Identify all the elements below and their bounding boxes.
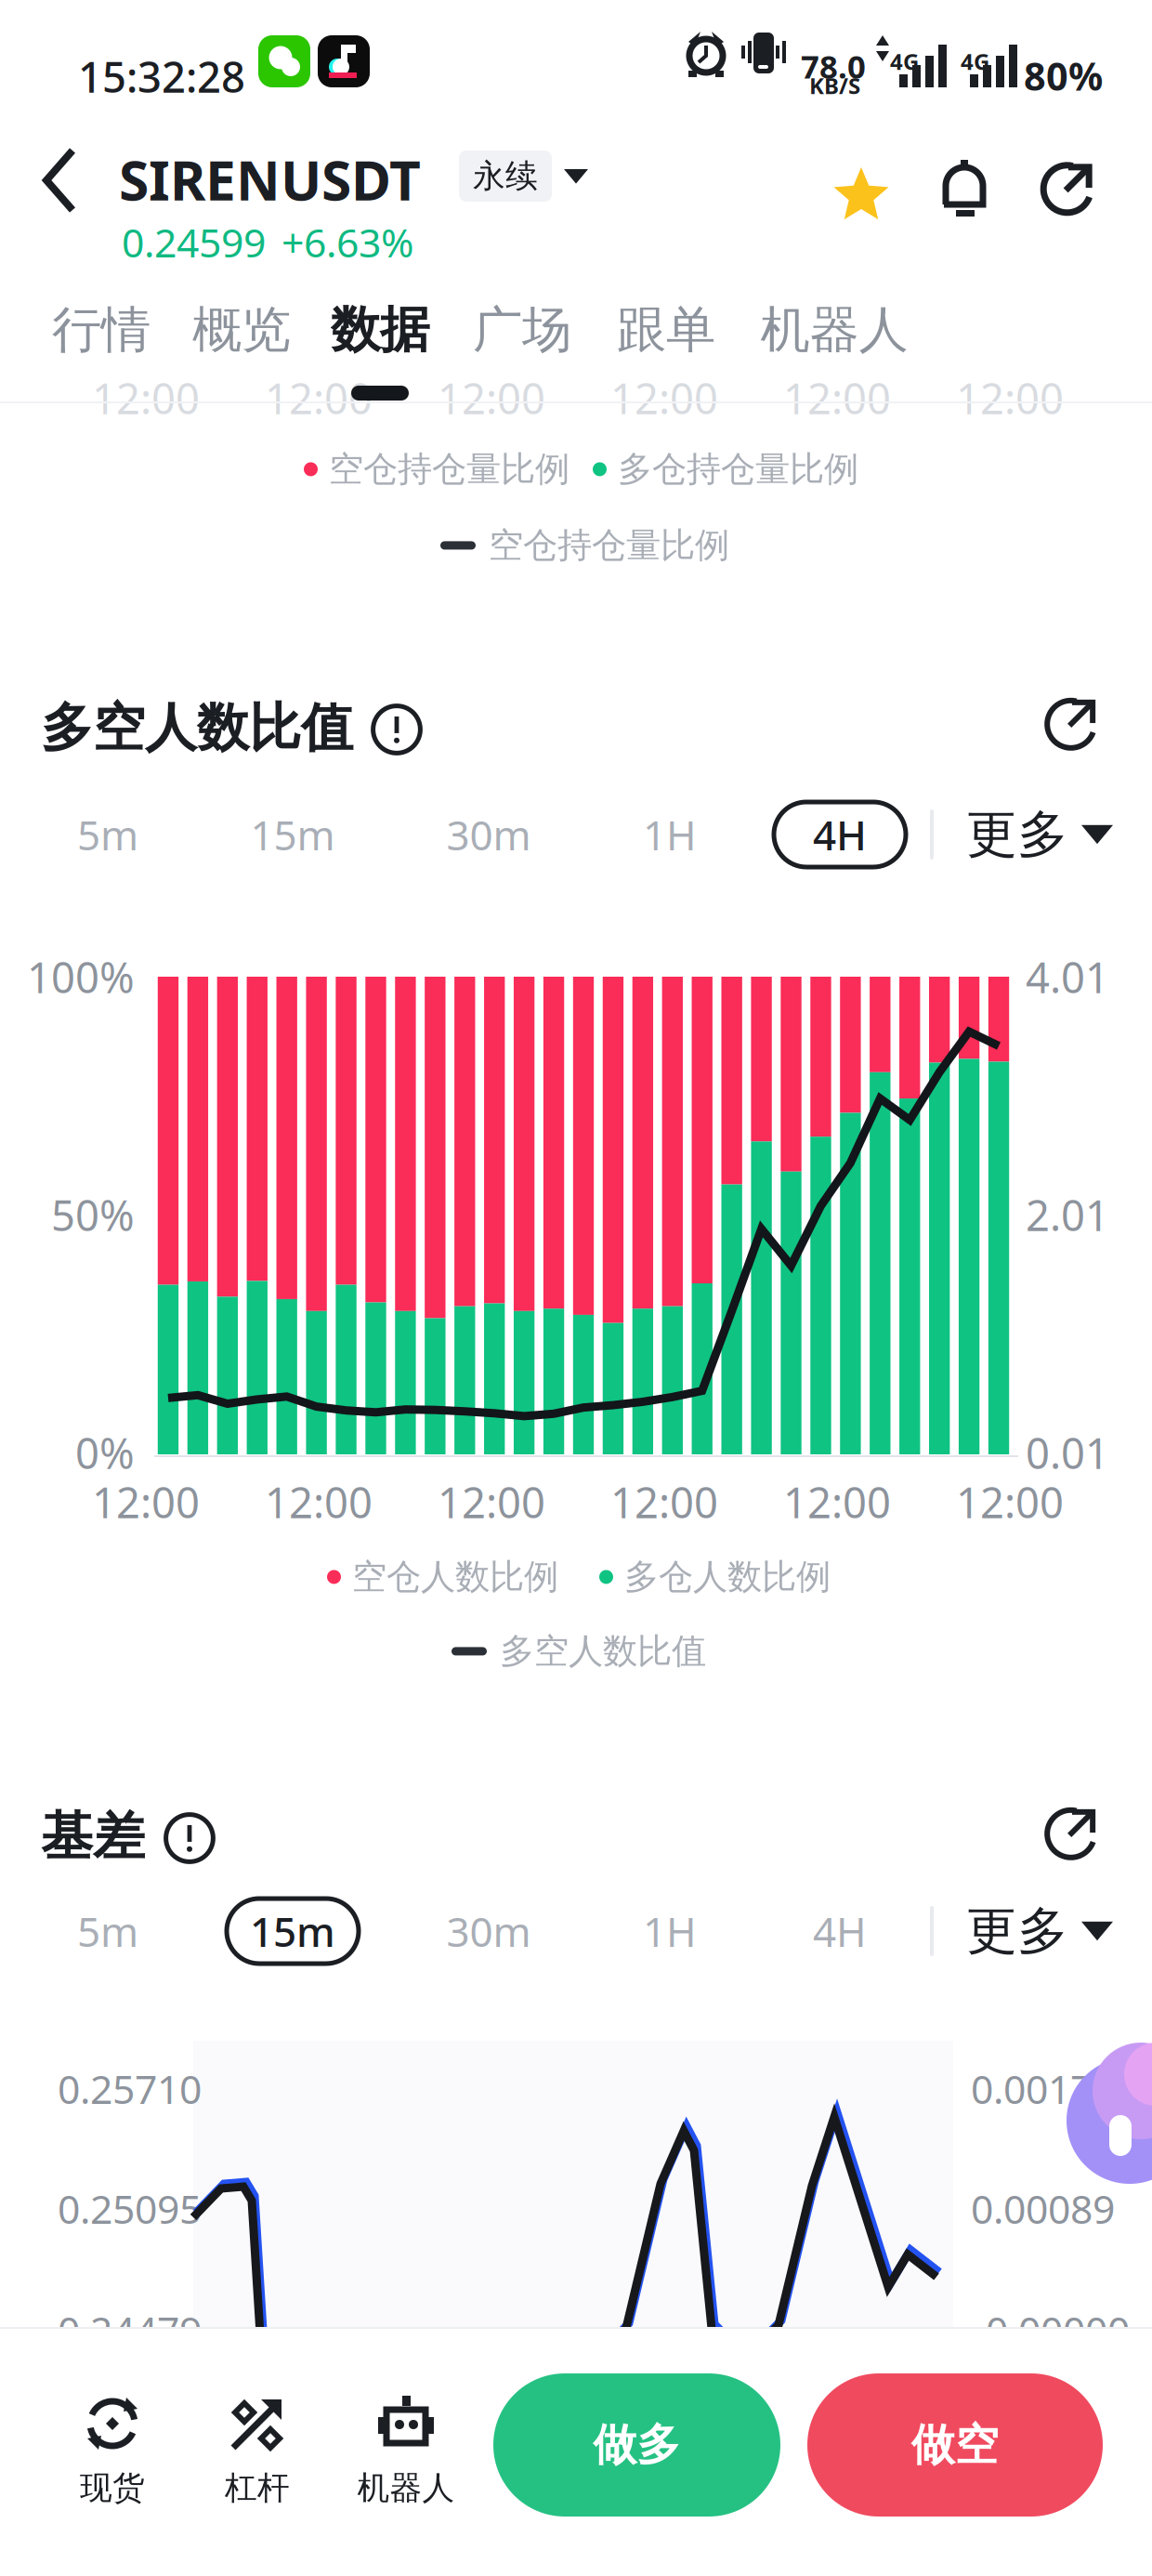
staticText: 12:00 bbox=[92, 370, 200, 426]
staticText: 做多 bbox=[593, 2418, 681, 2472]
staticText: 12:00 bbox=[438, 370, 545, 426]
button[interactable]: 做空 bbox=[807, 2373, 1103, 2517]
staticText: 5m bbox=[77, 1904, 138, 1958]
staticText: KB/S bbox=[809, 71, 860, 100]
button[interactable]: Assistant bbox=[1067, 2054, 1152, 2188]
staticText: 多仓人数比例 bbox=[624, 1556, 831, 1598]
button[interactable]: 更多 bbox=[953, 802, 1126, 867]
button[interactable]: 5m bbox=[42, 802, 174, 867]
button[interactable]: Expand chart bbox=[1046, 695, 1100, 749]
staticText: 12:00 bbox=[265, 370, 373, 426]
staticText: 12:00 bbox=[783, 370, 891, 426]
staticText: 4H bbox=[813, 1904, 867, 1958]
staticText: 跟单 bbox=[617, 299, 715, 360]
staticText: 0.25710 bbox=[58, 2062, 202, 2115]
staticText: 0.24599 bbox=[122, 216, 266, 268]
staticText: 更多 bbox=[966, 1900, 1068, 1962]
staticText: 空仓持仓量比例 bbox=[489, 524, 729, 567]
staticText: 永续 bbox=[473, 156, 538, 196]
staticText: 更多 bbox=[966, 803, 1068, 866]
button[interactable]: 15m bbox=[227, 802, 359, 867]
staticText: 空仓持仓量比例 bbox=[329, 448, 569, 491]
staticText: 数据 bbox=[331, 299, 429, 360]
button[interactable]: 4H bbox=[774, 1899, 906, 1964]
staticText: 行情 bbox=[52, 299, 151, 360]
staticText: 12:00 bbox=[265, 1474, 373, 1530]
staticText: 做空 bbox=[911, 2418, 999, 2472]
staticText: 机器人 bbox=[760, 299, 908, 360]
staticText: 15m bbox=[250, 807, 335, 862]
staticText: 空仓人数比例 bbox=[352, 1556, 558, 1598]
staticText: 50% bbox=[51, 1187, 135, 1243]
button[interactable]: 广场 bbox=[383, 288, 661, 372]
staticText: 78.0 bbox=[801, 45, 866, 87]
button[interactable]: 1H bbox=[604, 802, 736, 867]
staticText: 多仓持仓量比例 bbox=[618, 448, 858, 491]
staticText: 2.01 bbox=[1026, 1187, 1109, 1243]
staticText: 30m bbox=[446, 1904, 531, 1958]
staticText: 现货 bbox=[80, 2468, 145, 2508]
button[interactable]: 机器人 bbox=[695, 288, 974, 372]
button[interactable]: 概览 bbox=[102, 288, 381, 372]
button[interactable]: 更多 bbox=[953, 1899, 1126, 1964]
staticText: 100% bbox=[27, 949, 135, 1005]
button[interactable]: 30m bbox=[423, 1899, 555, 1964]
staticText: 15:32:28 bbox=[78, 48, 245, 104]
staticText: 4.01 bbox=[1026, 949, 1109, 1005]
staticText: 0% bbox=[75, 1425, 135, 1481]
staticText: 广场 bbox=[473, 299, 571, 360]
staticText: 概览 bbox=[192, 299, 291, 360]
staticText: 4G bbox=[890, 46, 919, 76]
button[interactable]: 现货 bbox=[56, 2396, 169, 2508]
staticText: 5m bbox=[77, 807, 138, 862]
staticText: +6.63% bbox=[281, 216, 413, 268]
staticText: 1H bbox=[643, 1904, 697, 1958]
staticText: 12:00 bbox=[783, 1474, 891, 1530]
staticText: 4H bbox=[813, 807, 867, 862]
staticText: −0.00000 bbox=[963, 2304, 1130, 2356]
staticText: 0.25095 bbox=[58, 2182, 202, 2235]
staticText: 30m bbox=[446, 807, 531, 862]
button[interactable]: 数据 bbox=[241, 288, 519, 372]
staticText: 0.00178 bbox=[971, 2062, 1115, 2115]
button[interactable]: Share bbox=[1042, 160, 1096, 214]
staticText: 12:00 bbox=[610, 1474, 718, 1530]
staticText: 12:00 bbox=[956, 370, 1064, 426]
staticText: 0.00089 bbox=[971, 2182, 1115, 2235]
button[interactable]: Expand chart bbox=[1046, 1805, 1100, 1859]
staticText: 12:00 bbox=[438, 1474, 545, 1530]
button[interactable]: 行情 bbox=[0, 288, 241, 372]
button[interactable]: Price alert bbox=[940, 160, 988, 217]
staticText: 12:00 bbox=[956, 1474, 1064, 1530]
staticText: 0.24479 bbox=[58, 2304, 202, 2356]
staticText: 12:00 bbox=[610, 370, 718, 426]
staticText: 4G bbox=[961, 46, 989, 76]
staticText: 多空人数比值 bbox=[500, 1630, 706, 1673]
button[interactable]: 永续 bbox=[459, 151, 552, 202]
button[interactable]: Back bbox=[26, 138, 93, 223]
button[interactable]: Info bbox=[371, 703, 423, 756]
button[interactable]: Favourite bbox=[832, 167, 890, 223]
button[interactable]: 1H bbox=[604, 1899, 736, 1964]
button[interactable]: 4H bbox=[774, 802, 906, 867]
staticText: 多空人数比值 bbox=[41, 696, 353, 760]
staticText: 1H bbox=[643, 807, 697, 862]
button[interactable]: 做多 bbox=[493, 2373, 780, 2517]
button[interactable]: 跟单 bbox=[527, 288, 805, 372]
staticText: 基差 bbox=[41, 1805, 145, 1869]
button[interactable]: 5m bbox=[42, 1899, 174, 1964]
staticText: 机器人 bbox=[357, 2468, 455, 2508]
staticText: SIRENUSDT bbox=[119, 143, 421, 216]
staticText: 0.01 bbox=[1026, 1425, 1109, 1481]
button[interactable]: 杠杆 bbox=[201, 2396, 314, 2508]
staticText: 15m bbox=[250, 1904, 335, 1958]
staticText: 杠杆 bbox=[225, 2468, 290, 2508]
button[interactable]: 30m bbox=[423, 802, 555, 867]
button[interactable]: 15m bbox=[227, 1899, 359, 1964]
button[interactable]: 机器人 bbox=[340, 2396, 472, 2508]
button[interactable]: Info bbox=[164, 1812, 216, 1864]
staticText: 80% bbox=[1024, 50, 1103, 101]
staticText: 12:00 bbox=[92, 1474, 200, 1530]
